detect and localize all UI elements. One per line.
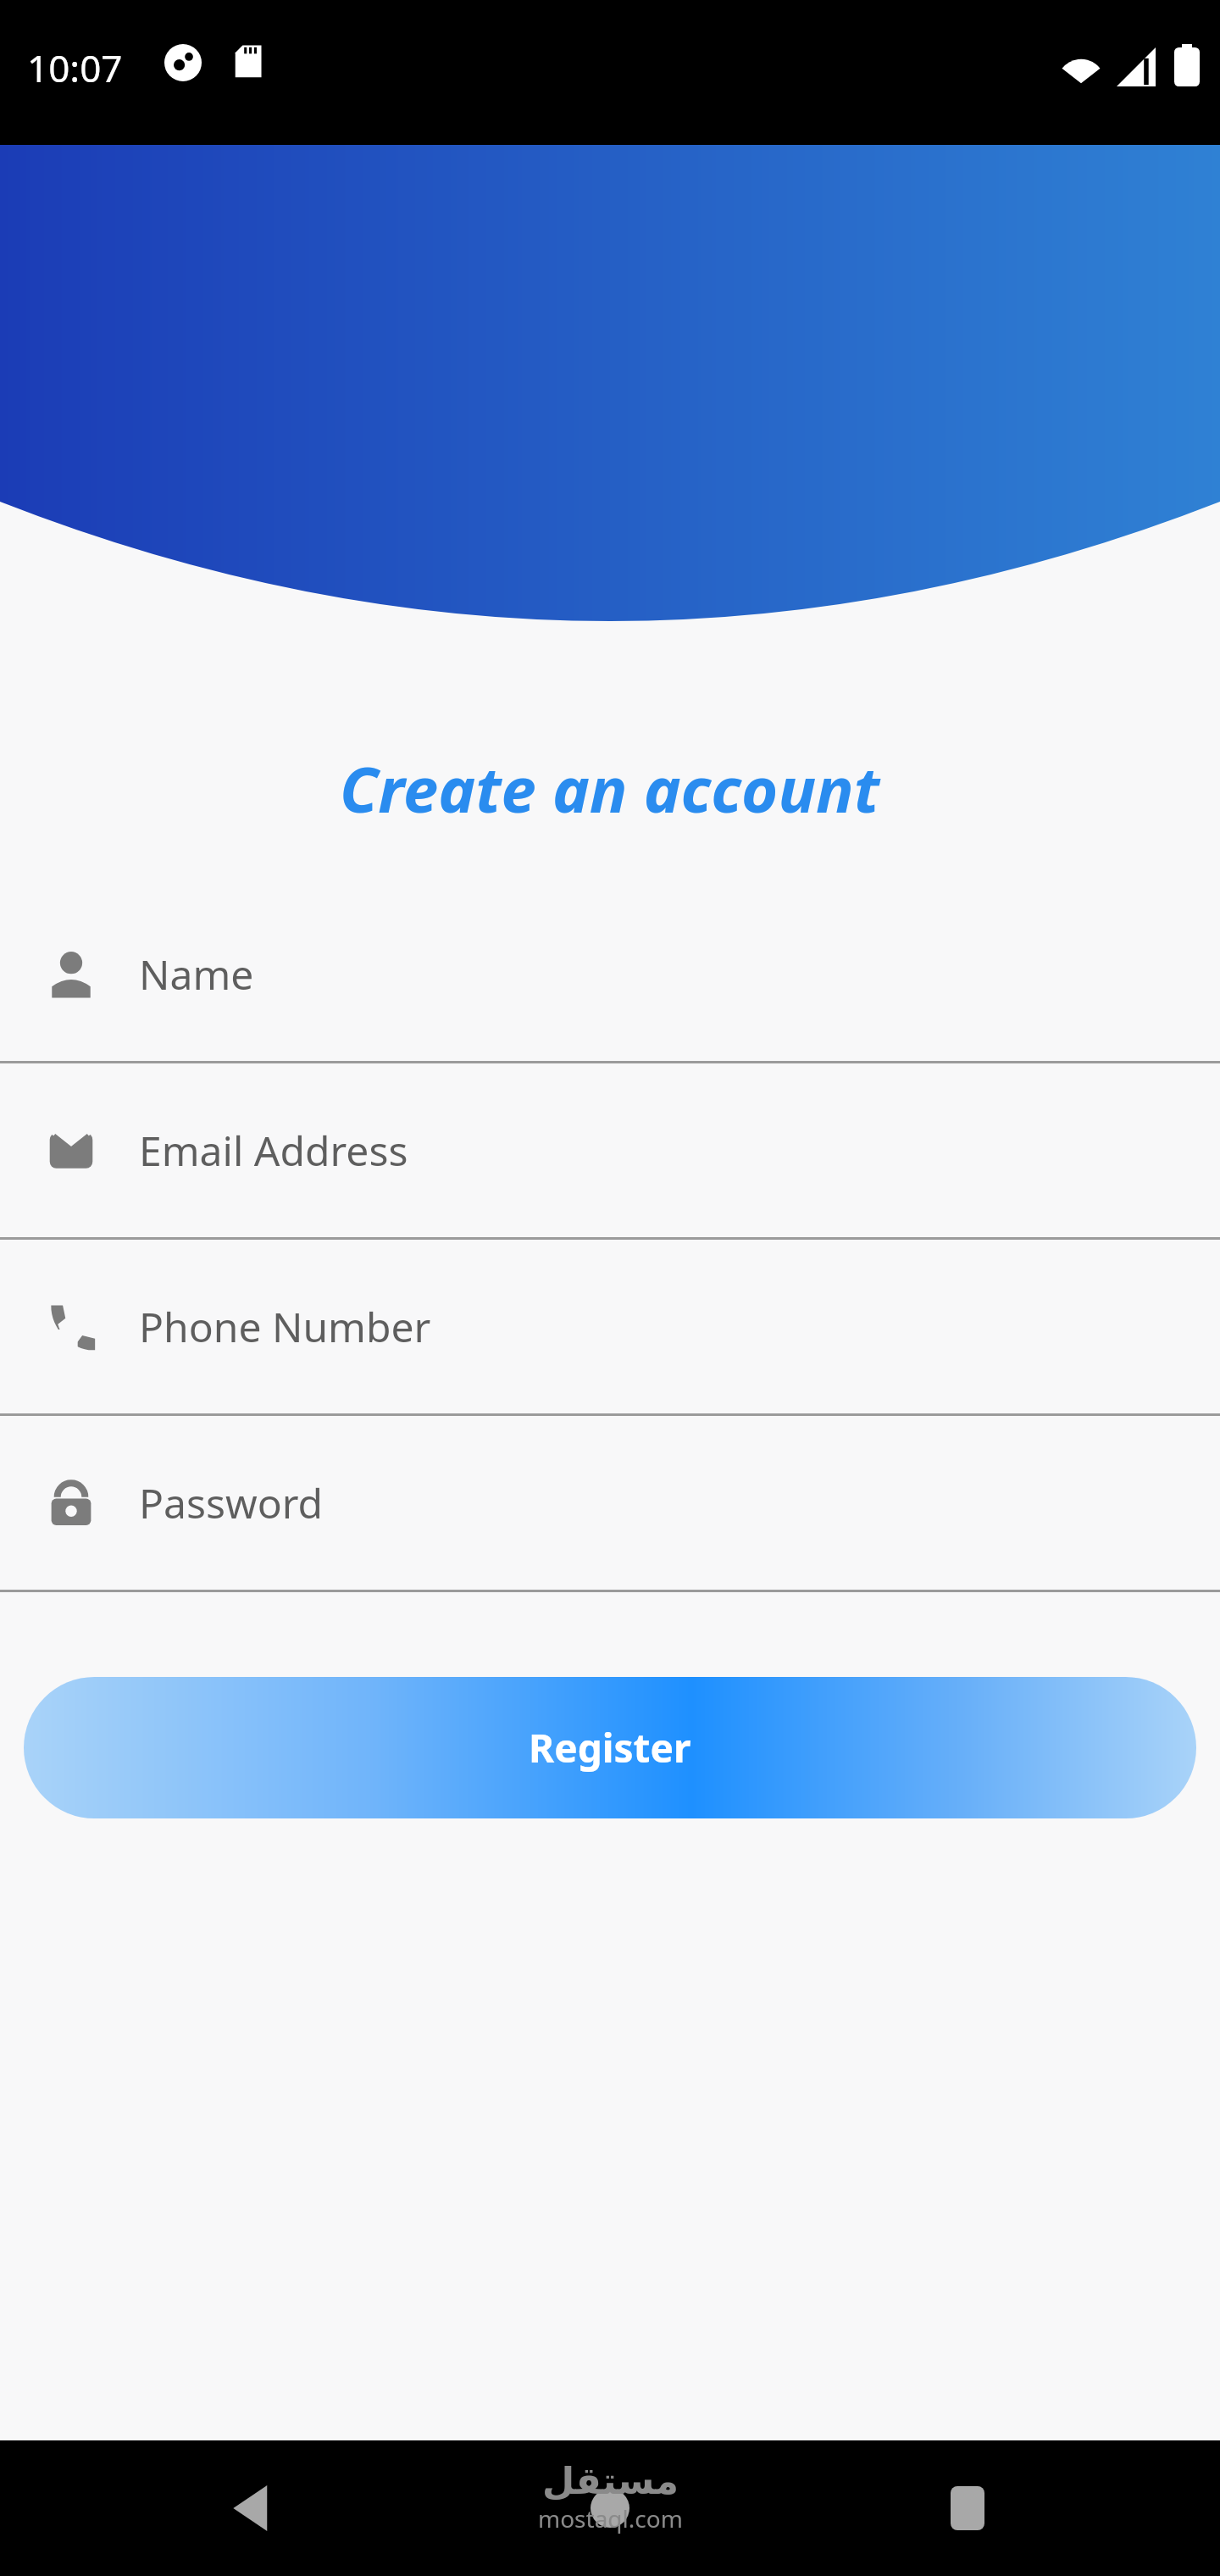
button[interactable]: Password — [0, 1416, 1220, 1590]
staticText: Create an account — [340, 746, 880, 831]
staticText: mostaql.com — [538, 2502, 683, 2534]
staticText: 10:07 — [27, 42, 123, 93]
button[interactable]: Phone Number — [0, 1240, 1220, 1413]
staticText: Email Address — [139, 1123, 408, 1178]
button[interactable]: Name — [0, 887, 1220, 1061]
button[interactable]: Recent apps — [917, 2457, 1018, 2559]
staticText: Register — [529, 1721, 691, 1774]
button[interactable]: Email Address — [0, 1063, 1220, 1237]
button[interactable]: Back — [202, 2457, 303, 2559]
button[interactable]: Home — [559, 2457, 661, 2559]
staticText: مستقل — [542, 2459, 679, 2502]
staticText: Name — [139, 947, 254, 1002]
staticText: Phone Number — [139, 1299, 431, 1354]
staticText: Password — [139, 1475, 324, 1530]
button[interactable]: Register — [24, 1677, 1196, 1818]
